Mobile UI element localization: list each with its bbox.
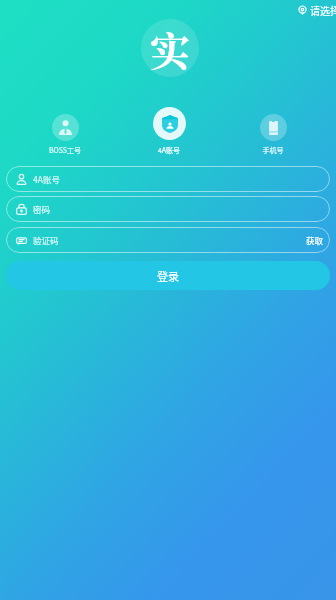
button[interactable]: 4A账号 [139,106,199,156]
button[interactable]: 手机号 [243,106,303,156]
staticText: 4A账号 [139,145,199,155]
button[interactable]: 密码 [6,196,330,222]
staticText: 登录 [157,268,179,284]
staticText: 实 [150,20,190,77]
staticText: 请选择 [310,3,336,17]
button[interactable]: 选择城市 [296,1,336,19]
button[interactable]: 验证码 [6,227,330,253]
staticText: 获取 [306,234,324,246]
button[interactable]: 登录 [6,261,330,290]
button[interactable]: BOSS工号 [35,106,95,156]
staticText: 4A账号 [33,173,60,185]
staticText: 验证码 [33,234,59,246]
staticText: BOSS工号 [35,145,95,155]
staticText: 手机号 [243,145,303,155]
button[interactable]: 4A账号 [6,166,330,192]
staticText: 密码 [33,203,51,215]
